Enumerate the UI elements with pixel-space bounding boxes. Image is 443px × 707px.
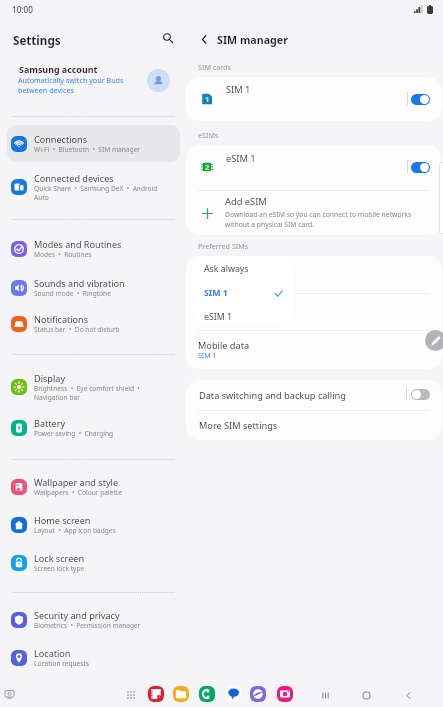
button[interactable]: All apps [123, 687, 139, 703]
staticText: 2 [205, 162, 210, 172]
staticText: Biometrics • Permission manager [34, 621, 141, 630]
button[interactable]: Notifications [7, 305, 180, 342]
button[interactable]: Display [7, 366, 180, 408]
button[interactable]: Search [157, 27, 179, 49]
staticText: Sound mode • Ringtone [34, 289, 111, 298]
button[interactable]: Security and privacy [7, 601, 180, 638]
button[interactable]: Connected devices [7, 166, 180, 208]
button[interactable]: Home screen [7, 506, 180, 543]
button[interactable]: Turn off [411, 94, 430, 105]
button[interactable]: Text messages [186, 300, 442, 330]
button[interactable]: SIM 1 [193, 282, 294, 305]
staticText: Location requests [34, 659, 90, 668]
staticText: Brightness • Eye comfort shield • Naviga… [34, 384, 140, 402]
button[interactable]: App [148, 686, 164, 702]
staticText: eSIMs [198, 130, 219, 140]
staticText: Mobile data [198, 339, 250, 352]
staticText: Lock screen [34, 552, 85, 564]
staticText: Home screen [34, 514, 91, 526]
button[interactable]: Connections [7, 125, 180, 162]
staticText: Settings [13, 33, 61, 49]
button[interactable]: Samsung account [4, 56, 182, 103]
button[interactable]: Wallpaper and style [7, 468, 180, 505]
staticText: Add eSIM [225, 195, 267, 208]
button[interactable]: Battery [7, 409, 180, 446]
staticText: Security and privacy [34, 609, 120, 621]
staticText: Samsung account [19, 63, 98, 75]
staticText: Calls [198, 265, 219, 278]
button[interactable]: Back [399, 686, 417, 704]
staticText: Text messages [198, 302, 261, 315]
staticText: Connections [34, 133, 88, 145]
button[interactable]: Turn on [411, 389, 430, 400]
button[interactable]: Lock screen [7, 544, 180, 581]
staticText: Connected devices [34, 172, 114, 184]
staticText: 1 [205, 94, 210, 104]
staticText: Modes • Routines [34, 250, 92, 259]
staticText: Ask always [204, 263, 249, 275]
staticText: SIM 1 [198, 314, 217, 324]
staticText: Quick Share • Samsung DeX • Android Auto [34, 184, 158, 202]
staticText: Location [34, 647, 71, 659]
staticText: Battery [34, 417, 66, 429]
button[interactable]: Modes and Routines [7, 230, 180, 267]
button[interactable]: Turn off [411, 162, 430, 173]
button[interactable]: Back [193, 28, 215, 50]
staticText: Preferred SIMs [198, 241, 249, 251]
staticText: Sounds and vibration [34, 277, 125, 289]
staticText: Wi-Fi • Bluetooth • SIM manager [34, 145, 141, 154]
button[interactable]: Edit [425, 330, 443, 351]
staticText: Modes and Routines [34, 238, 122, 250]
staticText: SIM cards [198, 62, 231, 72]
button[interactable]: Recent apps [316, 686, 334, 704]
button[interactable]: Ask always [193, 258, 294, 281]
button[interactable]: App [277, 686, 293, 702]
staticText: Status bar • Do not disturb [34, 325, 120, 334]
button[interactable]: Calls [186, 263, 442, 293]
staticText: More SIM settings [199, 419, 278, 432]
staticText: Wallpapers • Colour palette [34, 488, 122, 497]
staticText: SIM 1 [226, 83, 251, 96]
staticText: eSIM 1 [226, 152, 256, 165]
button[interactable]: App [199, 686, 215, 702]
button[interactable]: Sounds and vibration [7, 269, 180, 306]
button[interactable]: Home [357, 686, 375, 704]
button[interactable]: Location [7, 639, 180, 676]
staticText: Layout • App icon badges [34, 526, 116, 535]
staticText: SIM manager [217, 33, 288, 48]
staticText: Screen lock type [34, 564, 85, 573]
button[interactable]: Mobile data [186, 337, 442, 367]
button[interactable]: Screenshot [1, 686, 18, 703]
button[interactable]: App [225, 686, 241, 702]
button[interactable]: eSIM 1 [193, 306, 294, 326]
staticText: Power saving • Charging [34, 429, 114, 438]
staticText: Download an eSIM so you can connect to m… [225, 210, 412, 229]
staticText: Display [34, 372, 66, 384]
staticText: Wallpaper and style [34, 476, 119, 488]
staticText: eSIM 1 [204, 311, 233, 323]
staticText: 10:00 [12, 4, 33, 15]
staticText: SIM 1 [204, 287, 228, 299]
button[interactable]: App [250, 686, 266, 702]
staticText: Automatically switch your Buds between d… [18, 75, 124, 95]
staticText: Notifications [34, 313, 89, 325]
button[interactable]: App [173, 686, 189, 702]
staticText: SIM 1 [198, 351, 217, 361]
staticText: Data switching and backup calling [199, 389, 346, 402]
